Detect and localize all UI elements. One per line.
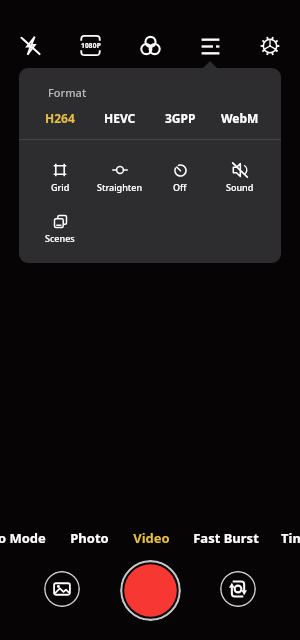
staticText: Scenes bbox=[45, 232, 75, 244]
button[interactable]: Pro Mode bbox=[0, 521, 58, 555]
button[interactable]: Color filters bbox=[120, 0, 180, 68]
staticText: HEVC bbox=[104, 110, 136, 126]
button[interactable]: Fast Burst bbox=[182, 521, 270, 555]
button[interactable]: Grid bbox=[30, 162, 90, 193]
button[interactable]: H264 bbox=[30, 107, 90, 129]
button[interactable]: Straighten bbox=[90, 162, 150, 193]
staticText: Format bbox=[48, 85, 87, 100]
staticText: WebM bbox=[221, 110, 259, 126]
button[interactable]: Record video bbox=[120, 560, 181, 621]
staticText: 1080P bbox=[81, 41, 101, 50]
button[interactable]: Sound bbox=[210, 162, 270, 193]
button[interactable]: Off bbox=[150, 162, 210, 193]
button[interactable]: Settings bbox=[240, 0, 300, 68]
button[interactable]: Timelapse bbox=[270, 521, 300, 555]
button[interactable]: Video bbox=[121, 521, 182, 555]
staticText: Pro Mode bbox=[0, 529, 46, 547]
button[interactable]: Switch camera bbox=[220, 571, 256, 607]
button[interactable]: Video resolution 1080P bbox=[60, 0, 120, 68]
button[interactable]: HEVC bbox=[90, 107, 150, 129]
staticText: Sound bbox=[226, 181, 254, 193]
staticText: Fast Burst bbox=[193, 529, 259, 547]
button[interactable]: Flash off bbox=[0, 0, 60, 68]
button[interactable]: 3GPP bbox=[150, 107, 210, 129]
staticText: Video bbox=[133, 529, 170, 547]
staticText: Timelapse bbox=[281, 529, 300, 547]
button[interactable]: More settings bbox=[180, 0, 240, 68]
staticText: Straighten bbox=[97, 181, 143, 193]
staticText: Grid bbox=[51, 181, 70, 193]
button[interactable]: Gallery bbox=[44, 571, 80, 607]
button[interactable]: WebM bbox=[210, 107, 270, 129]
button[interactable]: Photo bbox=[58, 521, 121, 555]
staticText: Off bbox=[173, 181, 187, 193]
staticText: Photo bbox=[70, 529, 109, 547]
button[interactable]: Scenes bbox=[30, 213, 90, 244]
staticText: H264 bbox=[45, 110, 75, 126]
staticText: 3GPP bbox=[165, 110, 196, 126]
